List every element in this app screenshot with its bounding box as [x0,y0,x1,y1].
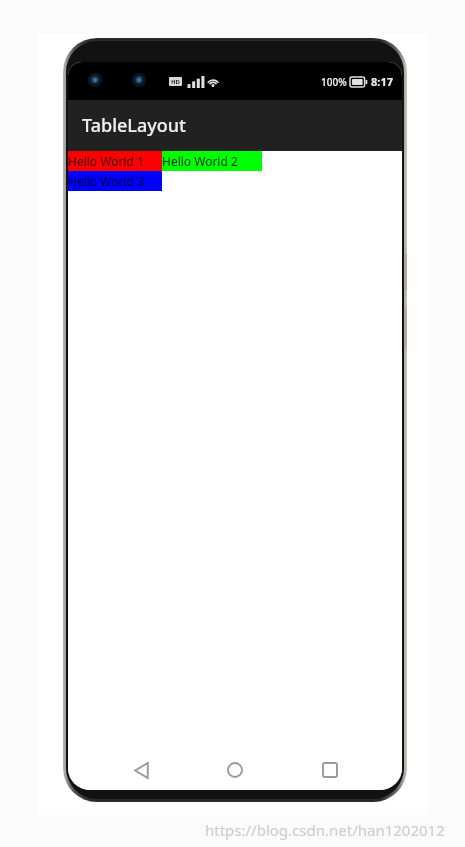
button[interactable]: Home [213,750,257,790]
button[interactable]: Hello World 1 [68,151,162,171]
button[interactable]: Back [119,750,163,790]
button[interactable]: Hello World 2 [162,151,262,171]
staticText: 8:17 [371,74,393,89]
staticText: 100% [321,75,347,89]
button[interactable]: Recents [308,750,352,790]
staticText: TableLayout [82,113,186,138]
staticText: https://blog.csdn.net/han1202012 [205,820,445,840]
button[interactable]: TableLayout [68,100,402,151]
button[interactable]: Hello World 3 [68,171,162,191]
staticText: Hello World 3 [68,173,144,189]
staticText: Hello World 1 [68,153,144,169]
staticText: HD [171,78,180,86]
staticText: Hello World 2 [162,153,238,169]
